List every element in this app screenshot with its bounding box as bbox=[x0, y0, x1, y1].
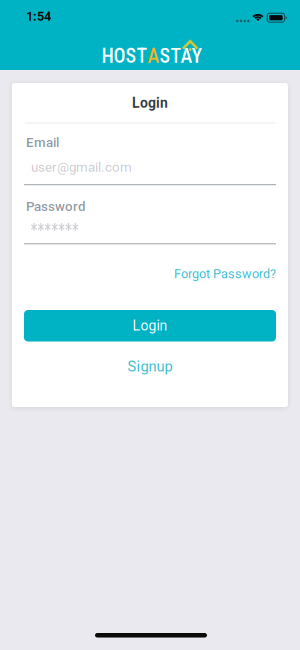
button[interactable] bbox=[24, 214, 276, 245]
staticText: Email bbox=[26, 135, 59, 150]
staticText: Forgot Password? bbox=[174, 267, 276, 281]
staticText: STAY bbox=[159, 44, 202, 68]
staticText: Password bbox=[26, 199, 86, 214]
staticText: Signup bbox=[127, 358, 172, 375]
staticText: HOST bbox=[101, 44, 147, 68]
button[interactable]: Forgot Password? bbox=[174, 266, 276, 282]
button[interactable]: user@gmail.com bbox=[24, 155, 276, 186]
staticText: Login bbox=[132, 317, 167, 334]
button[interactable]: Login bbox=[24, 310, 276, 341]
staticText: Login bbox=[132, 95, 168, 111]
staticText: 1:54 bbox=[26, 9, 51, 24]
button[interactable]: Signup bbox=[127, 357, 172, 375]
staticText: A bbox=[147, 44, 159, 68]
staticText: user@gmail.com bbox=[31, 159, 132, 175]
